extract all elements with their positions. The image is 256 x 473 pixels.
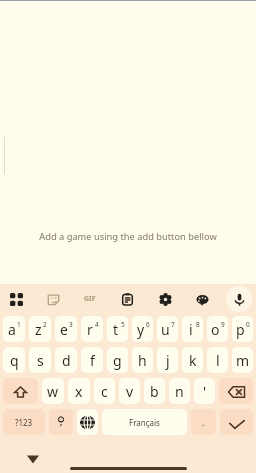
staticText: e — [60, 320, 68, 339]
staticText: n — [175, 382, 184, 401]
staticText: . — [202, 416, 205, 428]
staticText: c — [101, 382, 108, 401]
staticText: p — [236, 320, 245, 339]
button[interactable]: e — [55, 316, 77, 342]
staticText: w — [47, 382, 59, 401]
button[interactable]: h — [132, 347, 153, 373]
button[interactable]: s — [29, 347, 51, 373]
staticText: l — [216, 351, 220, 370]
button[interactable]: z — [29, 316, 51, 342]
button[interactable]: p — [232, 316, 253, 342]
button[interactable]: d — [55, 347, 77, 373]
staticText: j — [166, 351, 170, 370]
staticText: GIF — [84, 294, 96, 304]
button[interactable]: f — [81, 347, 103, 373]
staticText: 8 — [196, 320, 200, 329]
button[interactable]: g — [107, 347, 128, 373]
staticText: h — [138, 351, 147, 370]
staticText: 6 — [146, 320, 150, 329]
button[interactable]: i — [182, 316, 203, 342]
button[interactable]: Hide keyboard — [23, 450, 41, 468]
staticText: t — [113, 320, 119, 339]
button[interactable]: x — [68, 378, 90, 404]
button[interactable]: GIF — [75, 284, 105, 314]
button[interactable]: l — [207, 347, 228, 373]
staticText: x — [75, 382, 83, 401]
staticText: 2 — [43, 320, 47, 329]
staticText: y — [137, 320, 145, 339]
button[interactable]: c — [94, 378, 115, 404]
staticText: v — [126, 382, 134, 401]
button[interactable]: . — [191, 409, 216, 435]
staticText: o — [211, 320, 220, 339]
staticText: i — [189, 320, 193, 339]
button[interactable]: Backspace — [219, 378, 253, 404]
button[interactable]: t — [107, 316, 128, 342]
button[interactable]: Keyboard layouts — [1, 284, 31, 314]
button[interactable]: k — [182, 347, 203, 373]
staticText: g — [113, 351, 122, 370]
staticText: z — [35, 320, 42, 339]
staticText: m — [236, 351, 250, 370]
button[interactable]: a — [3, 316, 25, 342]
button[interactable]: v — [119, 378, 140, 404]
button[interactable]: o — [207, 316, 228, 342]
button[interactable]: b — [144, 378, 165, 404]
staticText: ' — [203, 382, 207, 401]
staticText: f — [90, 351, 95, 370]
button[interactable]: w — [42, 378, 64, 404]
button[interactable]: y — [132, 316, 153, 342]
staticText: 1 — [17, 320, 21, 329]
button[interactable]: u — [157, 316, 178, 342]
button[interactable]: Emoji and comma — [49, 409, 73, 435]
button[interactable]: Clipboard — [112, 284, 142, 314]
staticText: 9 — [221, 320, 225, 329]
staticText: 0 — [246, 320, 250, 329]
button[interactable]: Français — [102, 409, 187, 435]
button[interactable]: ?123 — [3, 409, 45, 435]
staticText: 5 — [121, 320, 125, 329]
button[interactable]: Enter — [220, 409, 253, 435]
staticText: Français — [129, 417, 160, 428]
staticText: ?123 — [15, 417, 33, 428]
staticText: Add a game using the add button bellow — [0, 230, 256, 243]
staticText: b — [150, 382, 159, 401]
button[interactable]: Voice input — [224, 284, 254, 314]
button[interactable]: n — [169, 378, 190, 404]
staticText: a — [8, 320, 16, 339]
staticText: r — [87, 320, 93, 339]
button[interactable]: m — [232, 347, 253, 373]
button[interactable]: Shift — [3, 378, 38, 404]
button[interactable]: Change language — [77, 409, 98, 435]
staticText: 4 — [95, 320, 99, 329]
staticText: s — [37, 351, 44, 370]
staticText: 3 — [69, 320, 73, 329]
staticText: d — [62, 351, 71, 370]
button[interactable]: q — [3, 347, 25, 373]
staticText: k — [189, 351, 197, 370]
staticText: u — [161, 320, 170, 339]
staticText: q — [10, 351, 19, 370]
button[interactable]: Settings — [150, 284, 180, 314]
button[interactable]: Stickers — [38, 284, 68, 314]
staticText: 7 — [171, 320, 175, 329]
button[interactable]: r — [81, 316, 103, 342]
button[interactable]: ' — [194, 378, 215, 404]
button[interactable]: Themes — [187, 284, 217, 314]
button[interactable]: j — [157, 347, 178, 373]
